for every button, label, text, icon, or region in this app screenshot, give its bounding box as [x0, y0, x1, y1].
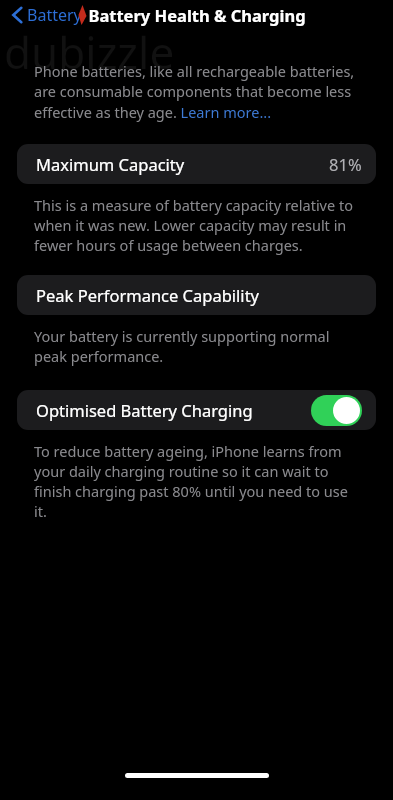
staticText: 81% — [329, 153, 362, 175]
staticText: dubizzle — [4, 22, 175, 82]
button[interactable]: Maximum Capacity — [17, 144, 376, 184]
staticText: Battery Health & Charging — [88, 4, 306, 26]
staticText: To reduce battery ageing, iPhone learns … — [34, 441, 363, 521]
staticText: Battery — [27, 4, 82, 26]
button[interactable]: Peak Performance Capability — [17, 275, 376, 315]
button[interactable]: Battery — [8, 1, 86, 29]
staticText: Phone batteries, like all rechargeable b… — [34, 61, 363, 123]
staticText: This is a measure of battery capacity re… — [34, 195, 363, 255]
staticText: Peak Performance Capability — [36, 284, 259, 306]
button[interactable]: Optimised Battery Charging — [17, 390, 376, 430]
staticText: Your battery is currently supporting nor… — [34, 326, 363, 366]
button[interactable]: Optimised Battery Charging toggle, on — [311, 395, 362, 426]
staticText: Optimised Battery Charging — [36, 399, 253, 421]
staticText: Maximum Capacity — [36, 153, 185, 175]
